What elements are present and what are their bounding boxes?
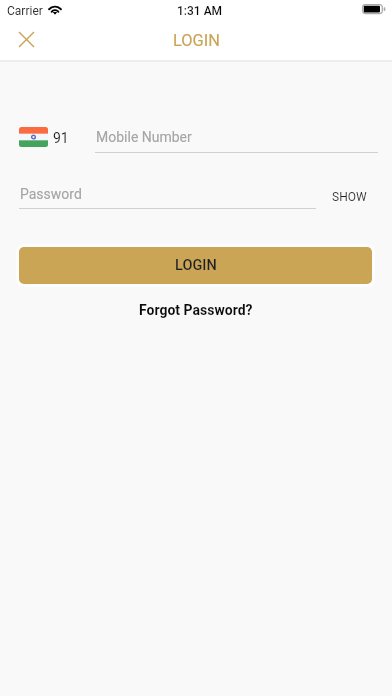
button[interactable]: Close — [8, 21, 45, 58]
staticText: 1:31 AM — [177, 4, 223, 18]
button[interactable]: SHOW — [324, 186, 375, 208]
staticText: LOGIN — [173, 31, 220, 50]
staticText: Forgot Password? — [139, 302, 253, 318]
button[interactable]: Forgot Password? — [131, 298, 261, 322]
staticText: Mobile Number — [96, 129, 192, 145]
button[interactable]: LOGIN — [19, 247, 372, 284]
staticText: Password — [20, 186, 82, 202]
button[interactable]: Mobile Number — [95, 124, 378, 152]
staticText: LOGIN — [175, 257, 217, 274]
button[interactable]: Password — [19, 181, 316, 208]
staticText: SHOW — [332, 190, 367, 204]
staticText: Carrier — [7, 4, 43, 18]
staticText: 91 — [53, 130, 69, 146]
